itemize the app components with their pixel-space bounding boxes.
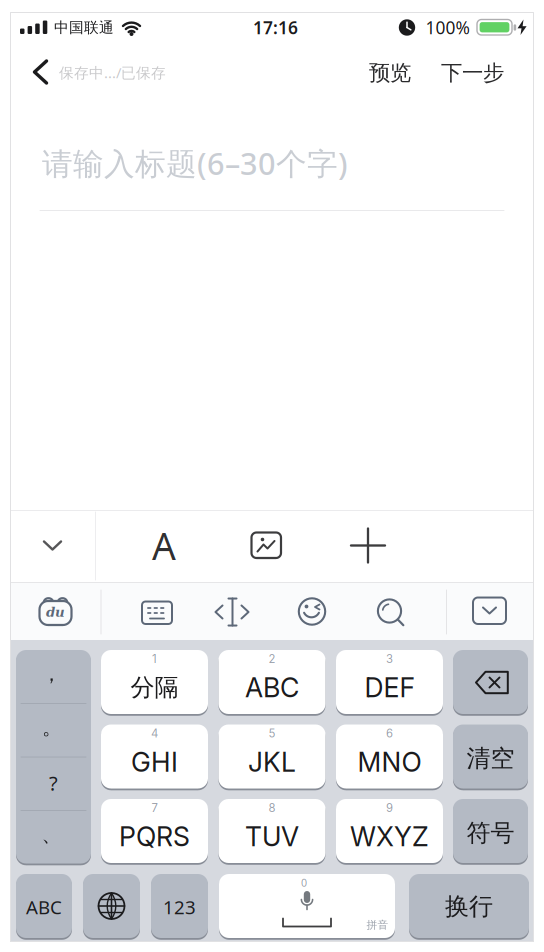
staticText: 清空: [466, 744, 514, 773]
staticText: ?: [49, 770, 58, 796]
staticText: MNO: [357, 746, 421, 778]
staticText: 7: [151, 801, 157, 815]
staticText: TUV: [245, 820, 299, 853]
staticText: A: [152, 521, 176, 570]
staticText: DEF: [364, 671, 414, 704]
staticText: 分隔: [130, 673, 178, 702]
staticText: 3: [386, 652, 393, 666]
staticText: 0: [301, 875, 307, 890]
staticText: 5: [268, 727, 275, 740]
staticText: ABC: [26, 895, 62, 919]
staticText: 2: [268, 652, 275, 666]
staticText: 换行: [445, 892, 493, 921]
staticText: WXYZ: [350, 820, 429, 853]
staticText: 、: [41, 822, 61, 847]
staticText: 。: [42, 715, 62, 740]
staticText: ABC: [245, 671, 299, 704]
staticText: 拼音: [366, 918, 388, 931]
staticText: 6: [386, 727, 393, 740]
staticText: 预览: [369, 60, 411, 86]
staticText: 9: [386, 801, 393, 815]
staticText: du: [46, 604, 65, 620]
staticText: 17:16: [253, 16, 298, 39]
staticText: 保存中.../已保存: [59, 63, 166, 82]
staticText: GHI: [131, 746, 178, 778]
staticText: 8: [268, 801, 275, 815]
staticText: JKL: [248, 746, 296, 778]
staticText: 符号: [466, 818, 514, 848]
staticText: PQRS: [119, 820, 190, 853]
staticText: 123: [163, 895, 196, 919]
staticText: 中国联通: [54, 18, 114, 36]
staticText: ，: [41, 662, 61, 686]
staticText: 100%: [425, 16, 469, 39]
staticText: 下一步: [441, 60, 504, 86]
staticText: 请输入标题(6–30个字): [42, 143, 348, 183]
staticText: 4: [151, 727, 158, 740]
staticText: 1: [152, 652, 157, 666]
